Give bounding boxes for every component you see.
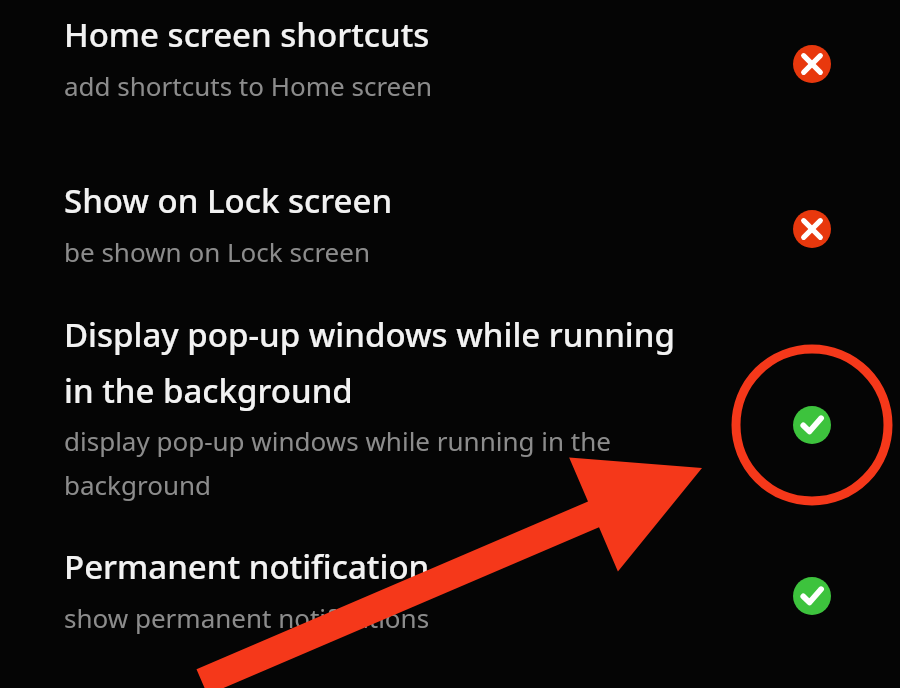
- staticText: Display pop-up windows while running in …: [64, 312, 704, 413]
- staticText: be shown on Lock screen: [64, 234, 764, 269]
- button[interactable]: [0, 8, 900, 128]
- staticText: display pop-up windows while running in …: [64, 423, 744, 502]
- staticText: show permanent notifications: [64, 600, 764, 635]
- button[interactable]: Enabled: [792, 576, 832, 616]
- button[interactable]: Disabled: [792, 44, 832, 84]
- button[interactable]: [0, 174, 900, 294]
- staticText: Home screen shortcuts: [64, 12, 764, 57]
- button[interactable]: [0, 308, 900, 520]
- staticText: Show on Lock screen: [64, 178, 764, 223]
- button[interactable]: Disabled: [792, 209, 832, 249]
- button[interactable]: Enabled: [792, 405, 832, 445]
- staticText: add shortcuts to Home screen: [64, 68, 764, 103]
- staticText: Permanent notification: [64, 544, 764, 589]
- button[interactable]: [0, 540, 900, 660]
